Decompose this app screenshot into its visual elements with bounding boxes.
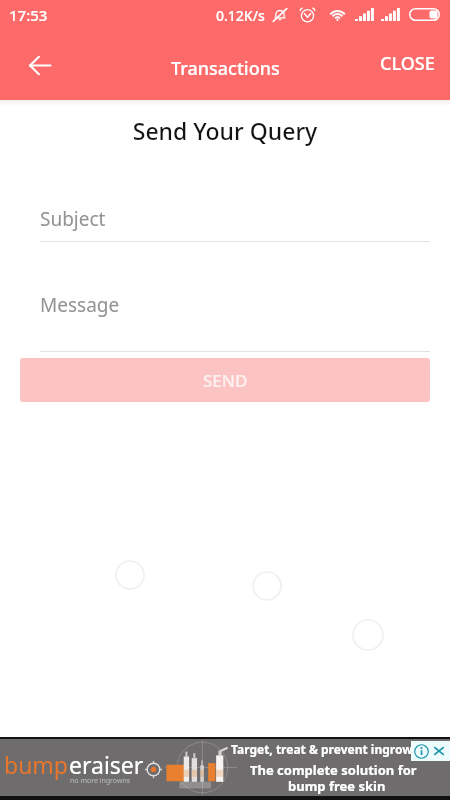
button[interactable]: Back [20,45,60,85]
button[interactable]: SEND [20,358,430,402]
staticText: CLOSE [380,51,435,76]
staticText: The complete solution for [250,761,417,779]
staticText: 0.12K/s [216,6,265,25]
staticText: Target, treat & prevent ingrown [231,741,421,757]
button[interactable]: Close ad [432,744,446,758]
staticText: Message [40,292,120,318]
staticText: no more ingrowns [70,776,131,786]
button[interactable]: bump [0,737,450,800]
staticText: SEND [203,369,248,392]
staticText: 17:53 [9,5,48,25]
staticText: Send Your Query [0,115,450,146]
button[interactable]: Ad info [414,744,429,759]
button[interactable]: CLOSE [365,42,450,85]
staticText: Subject [40,206,106,232]
staticText: bump [4,749,69,780]
staticText: bump free skin [288,777,386,795]
staticText: eraiser [69,749,144,780]
staticText: Transactions [171,56,280,81]
